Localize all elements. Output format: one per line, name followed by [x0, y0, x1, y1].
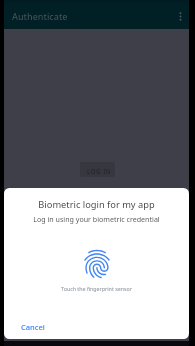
button[interactable]: LOG IN: [80, 162, 115, 177]
button[interactable]: More options: [171, 7, 190, 26]
staticText: LOG IN: [87, 167, 112, 175]
button[interactable]: Cancel: [15, 316, 51, 338]
staticText: Authenticate: [12, 10, 68, 22]
staticText: Biometric login for my app: [4, 198, 189, 211]
staticText: Cancel: [21, 322, 45, 332]
staticText: Log in using your biometric credential: [4, 214, 189, 224]
staticText: Touch the fingerprint sensor: [4, 285, 189, 292]
